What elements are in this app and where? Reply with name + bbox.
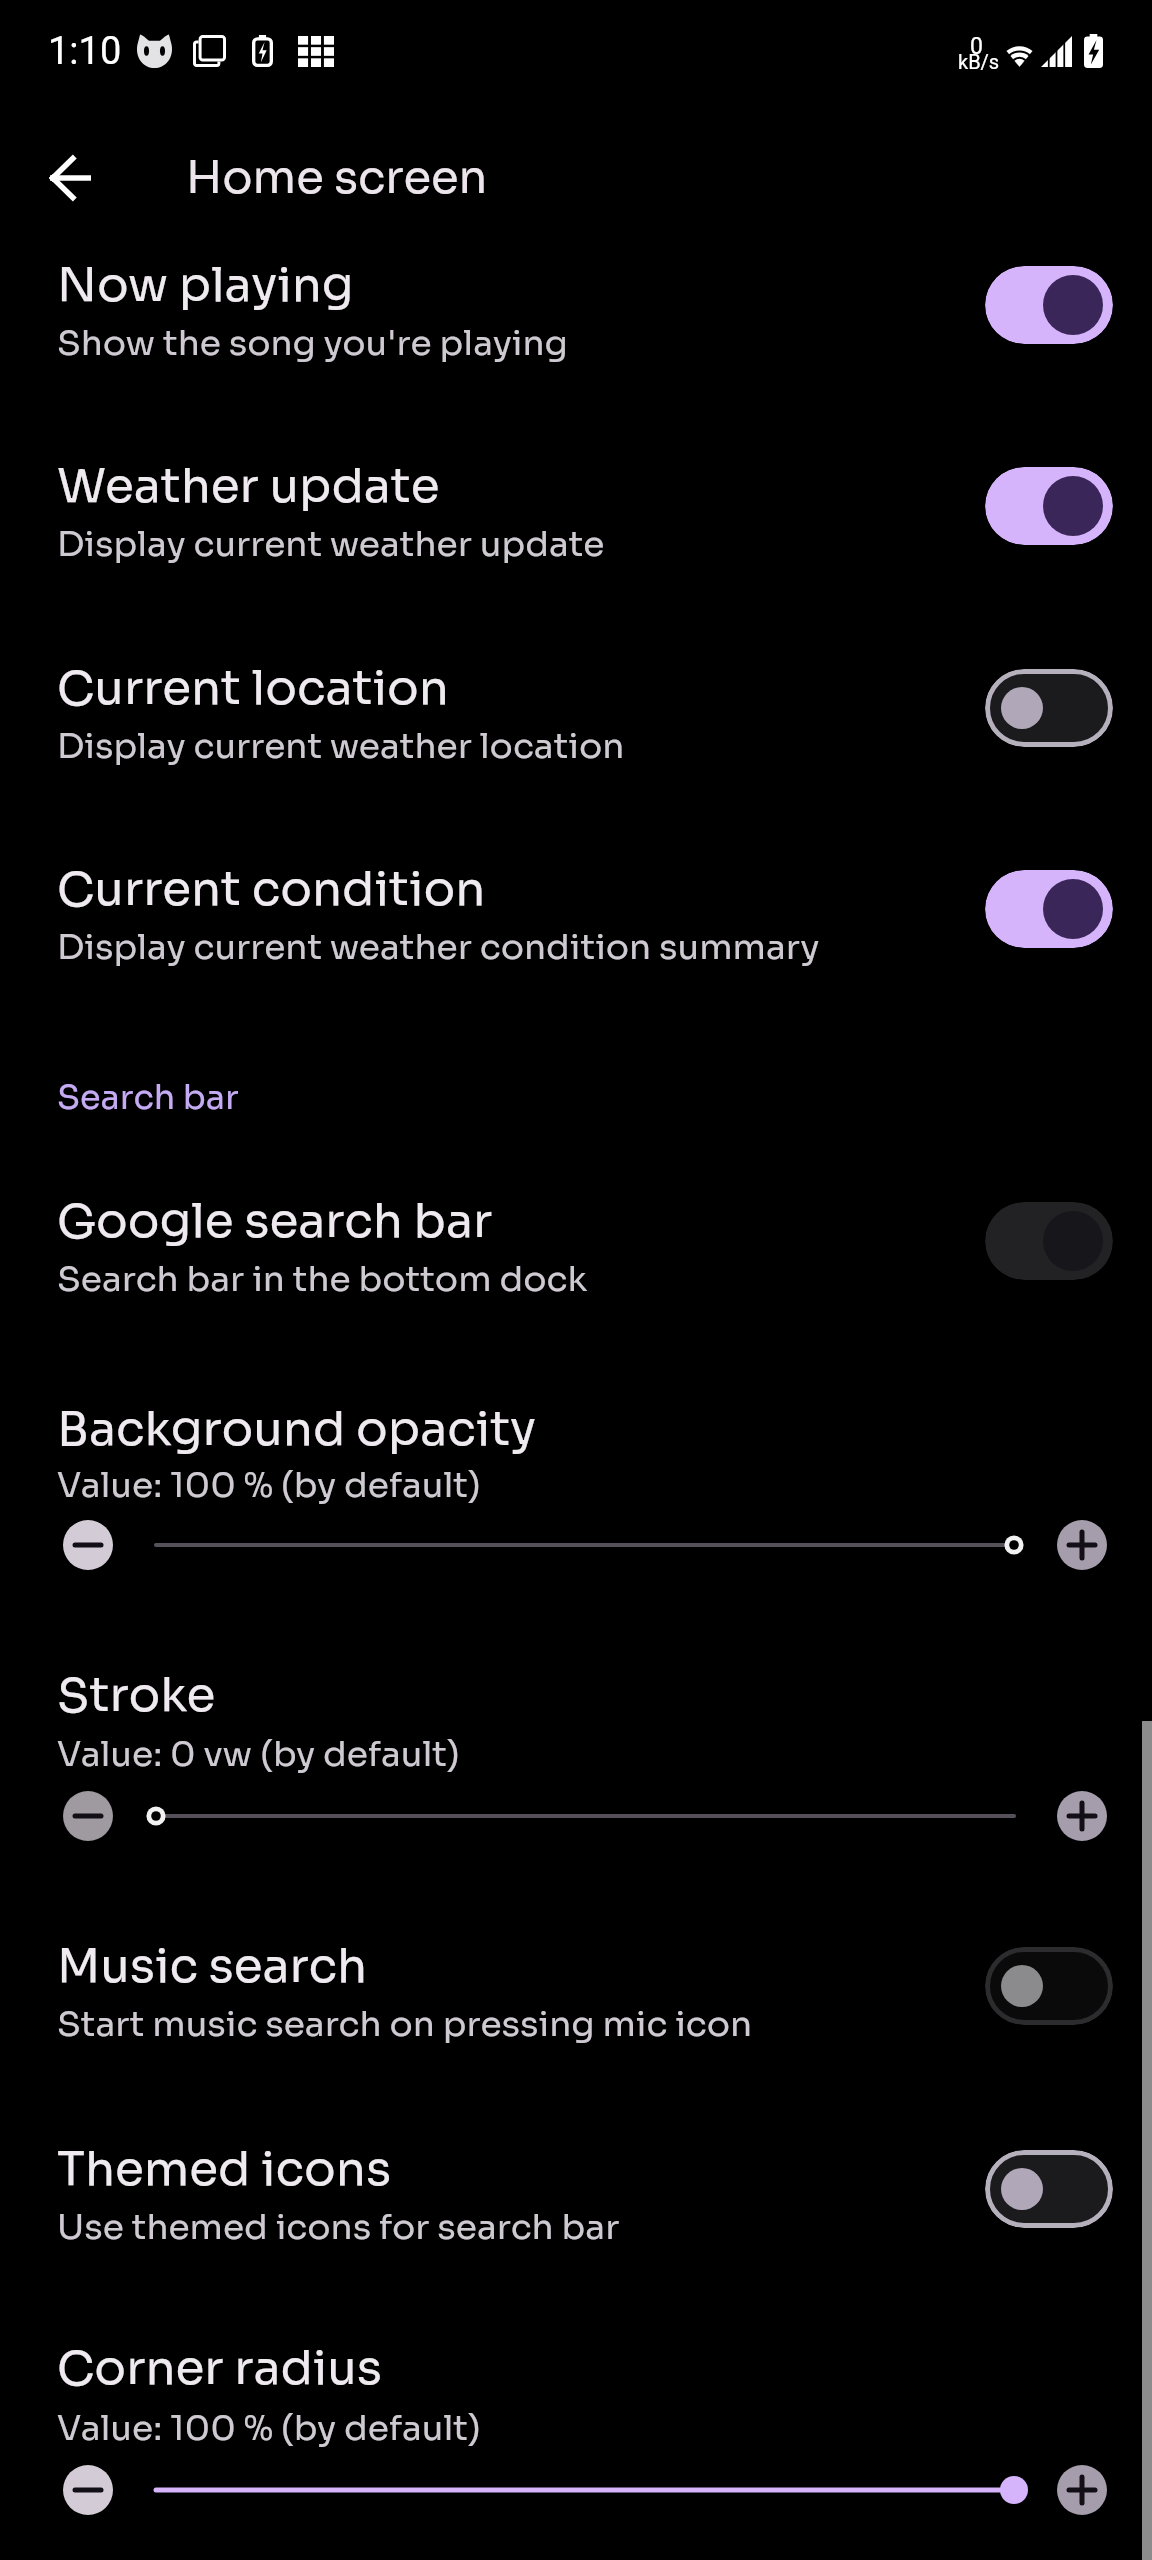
staticText: Display current weather location xyxy=(57,725,625,768)
button[interactable]: Increase xyxy=(1057,1520,1107,1570)
button[interactable]: Decrease xyxy=(63,1520,113,1570)
button[interactable]: Themed icons xyxy=(0,2100,1152,2260)
staticText: Home screen xyxy=(186,149,488,206)
button[interactable]: Toggle xyxy=(985,870,1113,948)
button[interactable]: Corner radius slider xyxy=(146,2460,1026,2520)
staticText: Background opacity xyxy=(57,1399,536,1458)
staticText: Use themed icons for search bar xyxy=(57,2206,620,2249)
button[interactable]: Increase xyxy=(1057,1791,1107,1841)
button[interactable]: Toggle xyxy=(985,669,1113,747)
button[interactable]: Decrease xyxy=(63,2465,113,2515)
staticText: Value: 100 % (by default) xyxy=(57,1464,481,1507)
button[interactable]: Toggle xyxy=(985,1202,1113,1280)
button[interactable]: Decrease xyxy=(63,1791,113,1841)
button[interactable]: Now playing xyxy=(0,216,1152,376)
staticText: Value: 0 vw (by default) xyxy=(57,1733,460,1776)
staticText: Search bar in the bottom dock xyxy=(57,1258,588,1301)
button[interactable]: Current location xyxy=(0,619,1152,779)
button[interactable]: Toggle xyxy=(985,467,1113,545)
staticText: Corner radius xyxy=(57,2338,383,2397)
button[interactable]: Background opacity slider xyxy=(146,1515,1026,1575)
button[interactable]: Stroke slider xyxy=(146,1786,1026,1846)
staticText: Display current weather update xyxy=(57,523,605,566)
staticText: 0 xyxy=(970,33,983,60)
button[interactable]: Toggle xyxy=(985,2150,1113,2228)
staticText: Value: 100 % (by default) xyxy=(57,2407,481,2450)
staticText: Stroke xyxy=(57,1665,216,1724)
staticText: Themed icons xyxy=(57,2139,392,2198)
button[interactable]: Back xyxy=(24,132,116,224)
staticText: Show the song you're playing xyxy=(57,322,568,365)
staticText: 1:10 xyxy=(48,29,122,74)
staticText: Display current weather condition summar… xyxy=(57,926,820,969)
staticText: Start music search on pressing mic icon xyxy=(57,2003,753,2046)
staticText: kB/s xyxy=(958,50,1000,73)
staticText: Search bar xyxy=(57,1077,239,1119)
button[interactable]: Weather update xyxy=(0,417,1152,577)
staticText: Music search xyxy=(57,1936,368,1995)
staticText: Current location xyxy=(57,658,449,717)
staticText: Now playing xyxy=(57,255,354,314)
staticText: Current condition xyxy=(57,859,486,918)
button[interactable]: Music search xyxy=(0,1897,1152,2057)
button[interactable]: Toggle xyxy=(985,1947,1113,2025)
staticText: Weather update xyxy=(57,456,440,515)
button[interactable]: Current condition xyxy=(0,820,1152,980)
button[interactable]: Increase xyxy=(1057,2465,1107,2515)
button[interactable]: Toggle xyxy=(985,266,1113,344)
staticText: Google search bar xyxy=(57,1191,493,1250)
button[interactable]: Google search bar xyxy=(0,1152,1152,1312)
